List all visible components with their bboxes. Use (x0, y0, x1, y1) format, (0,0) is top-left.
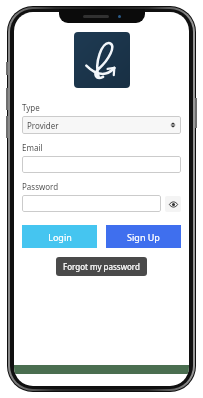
button[interactable]: Provider (22, 116, 181, 134)
staticText: Forgot my password (63, 261, 140, 272)
staticText: Type (22, 102, 40, 113)
button[interactable]: Forgot my password (56, 257, 147, 276)
button[interactable]: Sign Up (106, 225, 181, 248)
button[interactable] (22, 195, 161, 212)
staticText: Email (22, 142, 43, 153)
staticText: Provider (27, 120, 59, 131)
button[interactable]: Login (22, 225, 97, 248)
button[interactable]: Show password (165, 196, 181, 212)
staticText: Login (48, 231, 72, 243)
button[interactable] (22, 156, 181, 173)
staticText: Sign Up (127, 231, 160, 243)
staticText: Password (22, 181, 59, 192)
